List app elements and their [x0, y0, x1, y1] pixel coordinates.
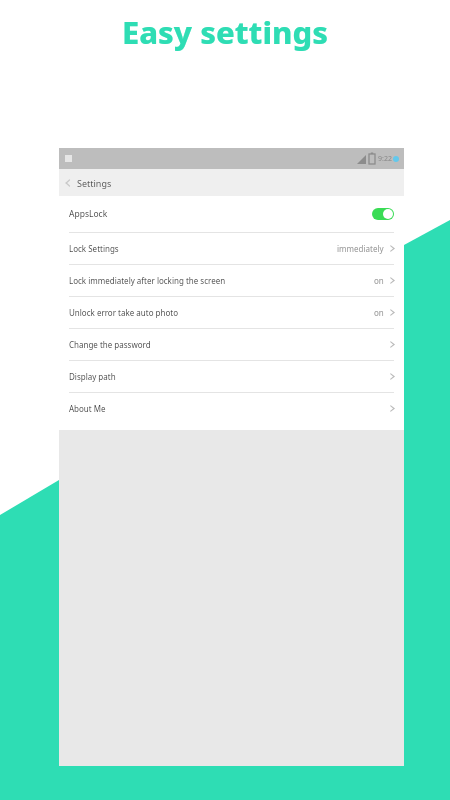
staticText: About Me: [69, 403, 389, 414]
button[interactable]: Display path: [59, 361, 404, 392]
button[interactable]: About Me: [59, 393, 404, 424]
staticText: Unlock error take auto photo: [69, 307, 374, 318]
button[interactable]: Change the password: [59, 329, 404, 360]
staticText: AppsLock: [69, 208, 372, 220]
button[interactable]: AppsLock: [59, 196, 404, 232]
button[interactable]: Lock Settings: [59, 233, 404, 264]
staticText: Settings: [77, 177, 112, 189]
button[interactable]: Back: [59, 174, 77, 192]
staticText: on: [374, 307, 384, 318]
staticText: Display path: [69, 371, 389, 382]
staticText: Change the password: [69, 339, 389, 350]
staticText: on: [374, 275, 384, 286]
staticText: Easy settings: [0, 11, 450, 53]
staticText: Lock immediately after locking the scree…: [69, 275, 374, 286]
button[interactable]: Unlock error take auto photo: [59, 297, 404, 328]
button[interactable]: Toggle AppsLock: [372, 208, 394, 220]
button[interactable]: Lock immediately after locking the scree…: [59, 265, 404, 296]
staticText: 9:22: [378, 154, 392, 164]
staticText: Lock Settings: [69, 243, 337, 254]
staticText: immediately: [337, 243, 384, 254]
